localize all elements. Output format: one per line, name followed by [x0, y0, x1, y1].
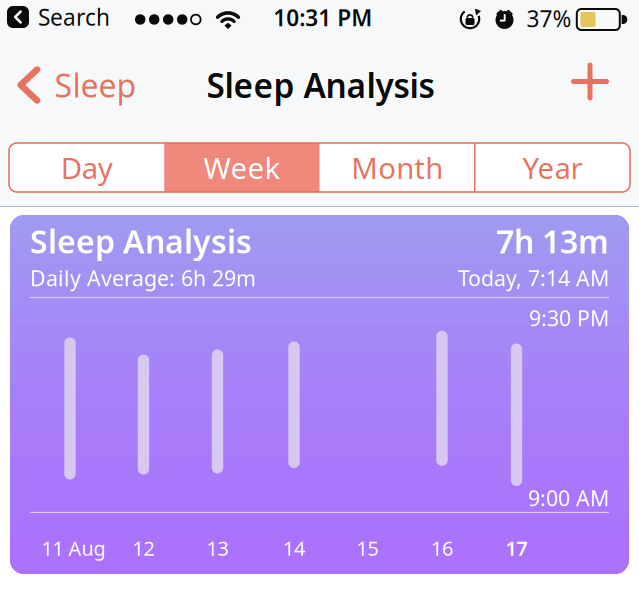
staticText: Today, 7:14 AM [458, 264, 609, 292]
staticText: Year [522, 148, 582, 187]
button[interactable]: Year [475, 143, 630, 192]
staticText: Week [203, 148, 280, 187]
staticText: Sleep Analysis [206, 63, 434, 107]
staticText: 13 [206, 535, 228, 561]
button[interactable]: Week [164, 143, 319, 192]
staticText: Day [61, 148, 113, 187]
staticText: Daily Average: 6h 29m [30, 264, 256, 292]
staticText: 12 [132, 535, 154, 561]
button[interactable]: Back to Sleep [16, 63, 186, 107]
staticText: 16 [431, 535, 453, 561]
staticText: 7h 13m [496, 220, 609, 262]
staticText: 10:31 PM [273, 2, 372, 32]
staticText: Sleep Analysis [30, 220, 252, 262]
staticText: 37% [526, 3, 571, 33]
staticText: 17 [505, 535, 527, 561]
staticText: Month [351, 148, 443, 187]
staticText: Search [38, 2, 110, 32]
staticText: 9:30 PM [529, 304, 609, 332]
staticText: 9:00 AM [528, 484, 609, 512]
button[interactable]: Add Data Point [572, 64, 607, 99]
staticText: Sleep [55, 64, 137, 106]
staticText: 15 [356, 535, 378, 561]
staticText: 14 [283, 535, 305, 561]
staticText: 11 Aug [41, 535, 105, 561]
button[interactable]: Day [9, 143, 164, 192]
button[interactable]: Month [319, 143, 475, 192]
button[interactable]: Back to Search [7, 3, 137, 31]
